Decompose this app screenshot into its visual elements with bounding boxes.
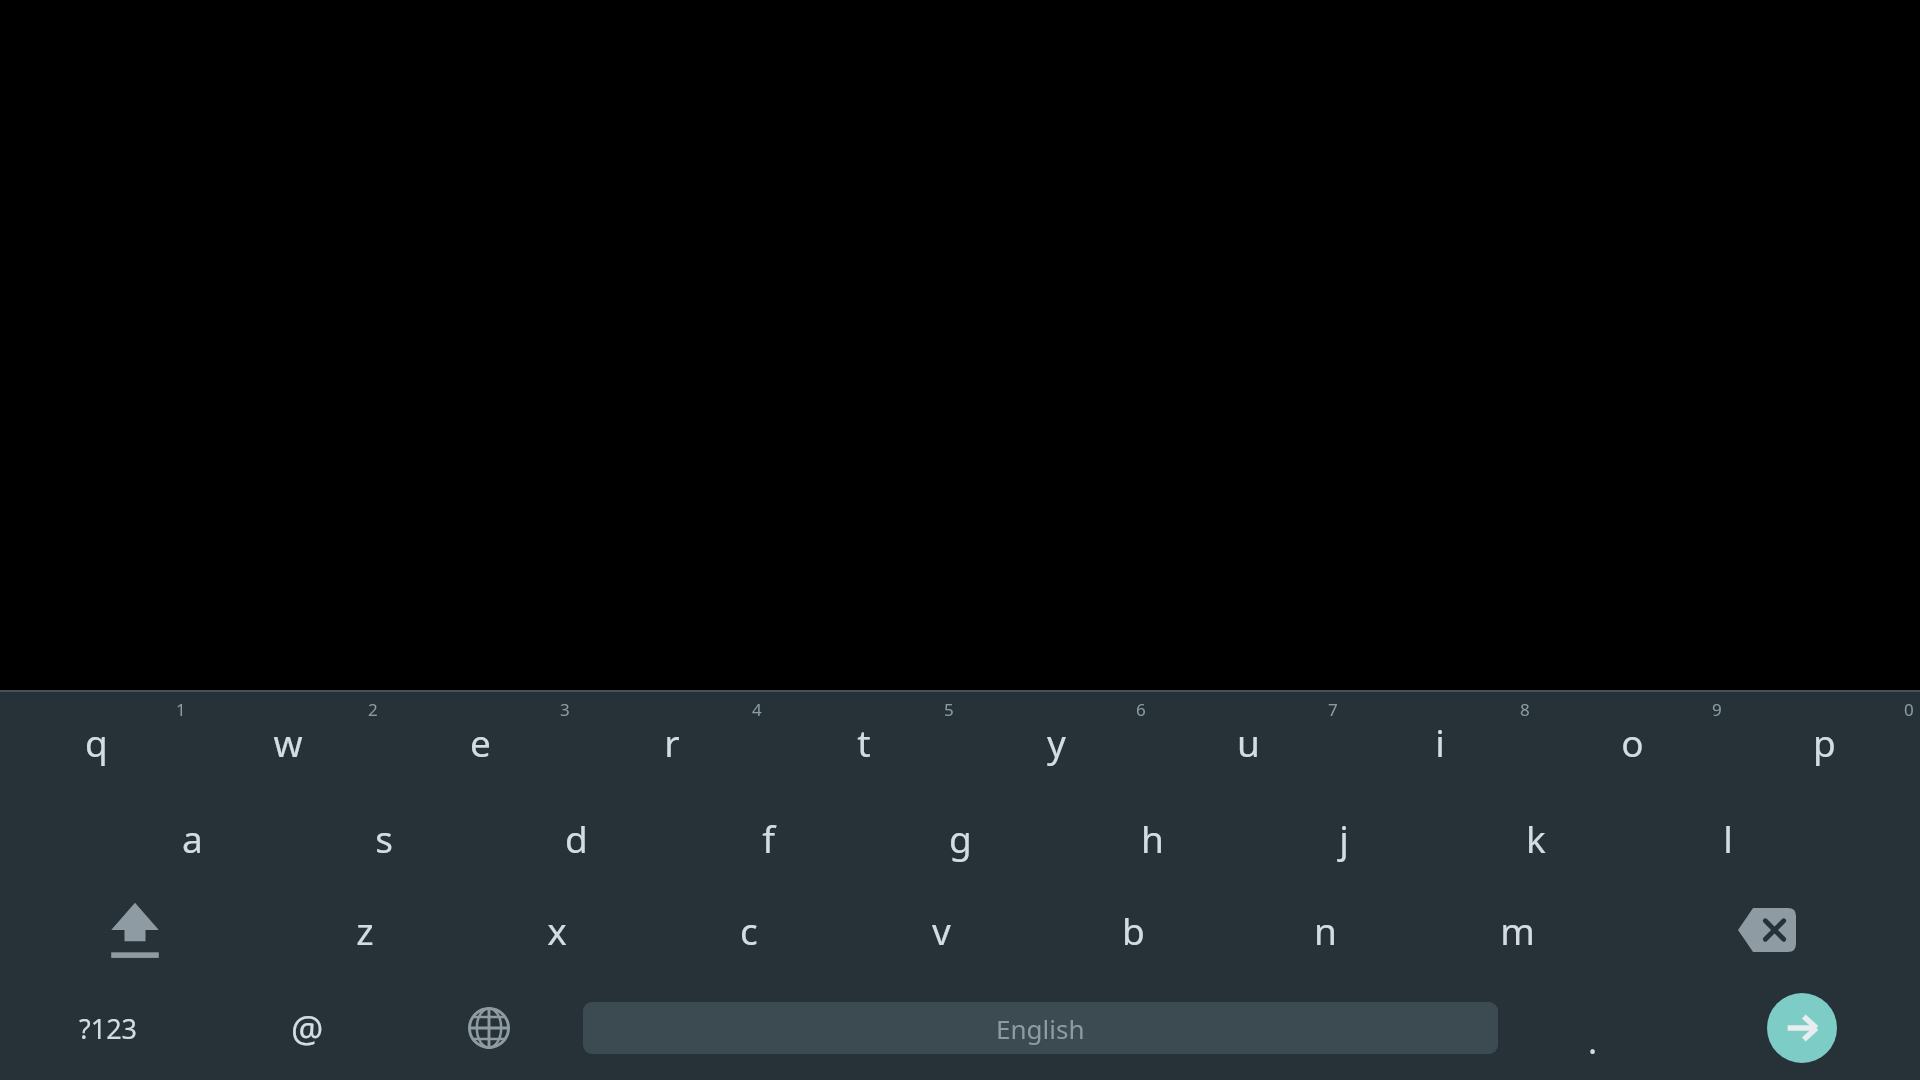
staticText: 9 xyxy=(1712,698,1722,721)
button[interactable]: k xyxy=(1440,792,1632,884)
staticText: f xyxy=(762,813,775,863)
button[interactable]: y xyxy=(960,692,1152,792)
button[interactable]: w xyxy=(192,692,384,792)
staticText: s xyxy=(375,813,393,863)
staticText: h xyxy=(1141,813,1164,863)
staticText: d xyxy=(565,813,588,863)
staticText: English xyxy=(996,1011,1085,1046)
staticText: z xyxy=(356,905,374,955)
button[interactable]: r xyxy=(576,692,768,792)
button[interactable]: Enter xyxy=(1767,993,1837,1063)
staticText: l xyxy=(1723,813,1733,863)
staticText: 0 xyxy=(1904,698,1914,721)
button[interactable]: t xyxy=(768,692,960,792)
button[interactable]: a xyxy=(96,792,288,884)
staticText: n xyxy=(1314,905,1337,955)
staticText: ?123 xyxy=(79,1010,138,1047)
staticText: c xyxy=(740,905,758,955)
staticText: 2 xyxy=(368,698,378,721)
staticText: 7 xyxy=(1328,698,1338,721)
button[interactable]: z xyxy=(269,884,461,976)
button[interactable]: l xyxy=(1632,792,1824,884)
staticText: 4 xyxy=(752,698,762,721)
button[interactable]: o xyxy=(1536,692,1728,792)
button[interactable]: @ xyxy=(217,976,398,1080)
staticText: 1 xyxy=(176,698,186,721)
staticText: 6 xyxy=(1136,698,1146,721)
button[interactable]: m xyxy=(1421,884,1613,976)
staticText: a xyxy=(182,813,203,863)
button[interactable]: v xyxy=(845,884,1037,976)
staticText: w xyxy=(273,717,303,767)
staticText: o xyxy=(1621,717,1644,767)
button[interactable]: Change language xyxy=(398,976,579,1080)
button[interactable]: f xyxy=(672,792,864,884)
staticText: e xyxy=(470,717,491,767)
staticText: k xyxy=(1526,813,1546,863)
button[interactable]: Shift xyxy=(0,884,269,976)
button[interactable]: h xyxy=(1056,792,1248,884)
button[interactable]: Backspace xyxy=(1613,884,1920,976)
button[interactable]: s xyxy=(288,792,480,884)
button[interactable]: English xyxy=(583,1002,1498,1054)
staticText: j xyxy=(1339,813,1349,863)
staticText: p xyxy=(1813,717,1836,767)
staticText: b xyxy=(1122,905,1145,955)
staticText: m xyxy=(1500,905,1535,955)
button[interactable]: i xyxy=(1344,692,1536,792)
staticText: x xyxy=(547,905,567,955)
staticText: q xyxy=(85,717,108,767)
staticText: 5 xyxy=(944,698,954,721)
button[interactable]: n xyxy=(1229,884,1421,976)
staticText: i xyxy=(1435,717,1445,767)
staticText: 3 xyxy=(560,698,570,721)
staticText: y xyxy=(1047,717,1066,767)
button[interactable]: c xyxy=(653,884,845,976)
button[interactable]: p xyxy=(1728,692,1920,792)
staticText: g xyxy=(949,813,972,863)
staticText: 8 xyxy=(1520,698,1530,721)
staticText: @ xyxy=(291,1004,324,1053)
button[interactable]: x xyxy=(461,884,653,976)
button[interactable]: e xyxy=(384,692,576,792)
staticText: r xyxy=(664,717,680,767)
button[interactable]: q xyxy=(0,692,192,792)
button[interactable]: . xyxy=(1502,976,1683,1080)
staticText: u xyxy=(1237,717,1260,767)
button[interactable]: d xyxy=(480,792,672,884)
button[interactable]: b xyxy=(1037,884,1229,976)
staticText: t xyxy=(857,717,871,767)
button[interactable]: u xyxy=(1152,692,1344,792)
button[interactable]: g xyxy=(864,792,1056,884)
staticText: v xyxy=(932,905,951,955)
button[interactable]: ?123 xyxy=(0,976,217,1080)
button[interactable]: j xyxy=(1248,792,1440,884)
staticText: . xyxy=(1588,1018,1598,1064)
